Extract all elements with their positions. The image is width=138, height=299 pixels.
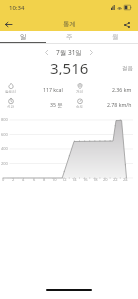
staticText: 18: [93, 177, 98, 182]
staticText: 걸음: [122, 65, 133, 72]
staticText: 거리: [76, 90, 84, 95]
button[interactable]: Back: [0, 16, 17, 33]
staticText: 800: [1, 117, 8, 122]
staticText: 0: [2, 177, 5, 182]
staticText: 주: [66, 33, 73, 41]
staticText: 20: [103, 177, 108, 182]
staticText: 14: [72, 177, 77, 182]
button[interactable]: 주: [46, 31, 92, 43]
staticText: 시간: [7, 105, 15, 110]
staticText: 12: [62, 177, 67, 182]
staticText: 칼로리: [5, 90, 16, 95]
staticText: 10: [52, 177, 57, 182]
staticText: 200: [1, 161, 8, 166]
button[interactable]: 칼로리: [0, 81, 69, 96]
staticText: 3,516: [50, 58, 89, 75]
button[interactable]: Share: [118, 16, 135, 33]
staticText: 월: [112, 33, 119, 41]
button[interactable]: 일: [0, 31, 46, 43]
staticText: 일: [20, 33, 27, 41]
staticText: 16: [83, 177, 88, 182]
button[interactable]: 속도: [69, 96, 138, 111]
staticText: 600: [1, 132, 8, 137]
staticText: 2: [12, 177, 15, 182]
staticText: 24: [123, 177, 128, 182]
button[interactable]: Previous day: [41, 47, 52, 58]
staticText: 속도: [76, 105, 84, 110]
staticText: 8: [43, 177, 46, 182]
button[interactable]: 거리: [69, 81, 138, 96]
staticText: 400: [1, 146, 8, 151]
button[interactable]: Next day: [86, 47, 97, 58]
button[interactable]: 월: [92, 31, 138, 43]
staticText: 2.36 km: [112, 86, 132, 93]
staticText: 통계: [63, 20, 76, 28]
staticText: 6: [33, 177, 36, 182]
staticText: 35 분: [50, 101, 63, 108]
staticText: 22: [113, 177, 118, 182]
staticText: 10:34: [9, 4, 25, 12]
staticText: 7월 31일: [56, 48, 82, 57]
staticText: 4: [22, 177, 25, 182]
button[interactable]: 시간: [0, 96, 69, 111]
staticText: 117 kcal: [43, 86, 63, 93]
staticText: 2.78 km/h: [107, 101, 132, 108]
